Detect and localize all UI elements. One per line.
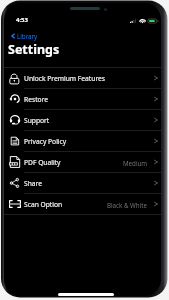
staticText: PDF Quality [24,158,61,167]
staticText: 4:53 [16,16,28,24]
button[interactable]: Unlock Premium Features [4,67,161,88]
button[interactable]: Restore [4,88,161,109]
staticText: Medium [123,159,148,167]
button[interactable]: Library [9,30,39,41]
staticText: Scan Option [24,200,63,209]
button[interactable]: Share [4,172,161,193]
button[interactable]: Privacy Policy [4,130,161,151]
button[interactable]: Scan Option [4,193,161,214]
staticText: Privacy Policy [24,137,67,146]
staticText: Restore [24,95,48,104]
staticText: Support [24,116,50,125]
button[interactable]: PDF Quality [4,151,161,172]
button[interactable]: Support [4,109,161,130]
staticText: Share [24,179,42,188]
staticText: Library [17,32,38,40]
staticText: Settings [8,41,60,58]
staticText: Unlock Premium Features [24,74,106,83]
staticText: Black & White [107,201,148,209]
